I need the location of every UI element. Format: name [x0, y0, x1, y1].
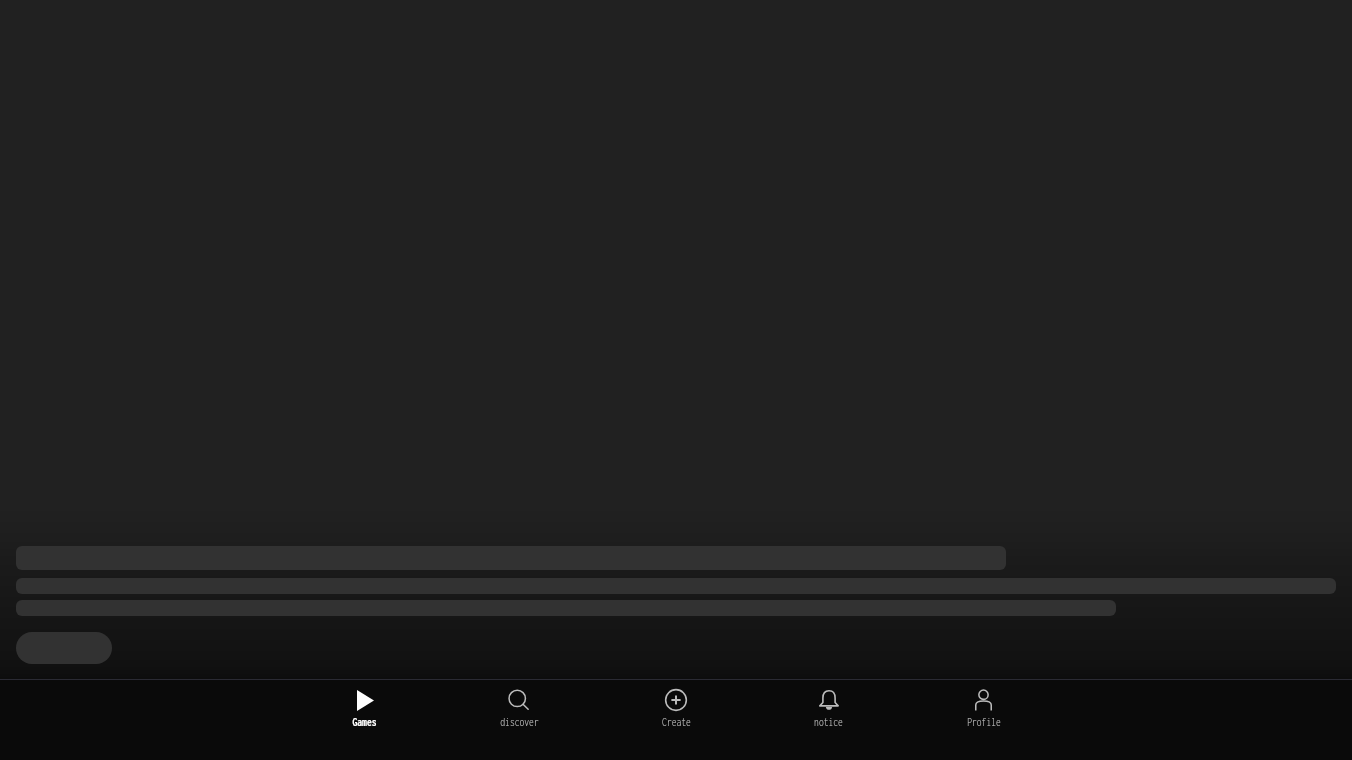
other: Create [665, 689, 687, 711]
button[interactable]: Create [596, 680, 751, 760]
button[interactable]: Games [286, 680, 441, 760]
button[interactable]: notice [751, 680, 906, 760]
other: Games [357, 690, 374, 711]
other: Profile [975, 690, 992, 711]
staticText: notice [814, 716, 843, 729]
staticText: Games [352, 716, 377, 729]
staticText: Create [662, 716, 691, 729]
button[interactable]: discover [441, 680, 596, 760]
staticText: discover [500, 716, 539, 729]
staticText: Profile [967, 716, 1001, 729]
other: discover [508, 690, 529, 711]
button[interactable]: Profile [906, 680, 1061, 760]
other: notice [819, 690, 839, 711]
